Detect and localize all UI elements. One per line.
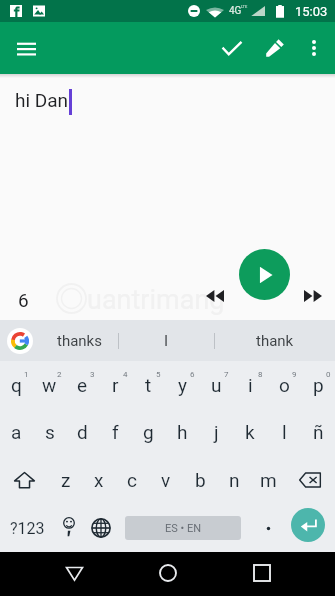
- staticText: ES • EN: [165, 522, 202, 535]
- staticText: 15:03: [295, 4, 328, 19]
- button[interactable]: f: [99, 408, 132, 456]
- button[interactable]: d: [66, 408, 99, 456]
- staticText: g: [143, 421, 154, 443]
- button[interactable]: More options: [294, 28, 334, 68]
- staticText: e: [77, 374, 88, 396]
- button[interactable]: r: [99, 361, 132, 408]
- staticText: k: [245, 421, 255, 443]
- staticText: w: [42, 374, 57, 396]
- staticText: h: [177, 421, 188, 443]
- button[interactable]: z: [49, 456, 82, 504]
- staticText: t: [145, 374, 152, 396]
- button[interactable]: m: [251, 456, 285, 504]
- button[interactable]: Play: [239, 249, 290, 300]
- button[interactable]: Back: [51, 552, 95, 596]
- button[interactable]: q: [0, 361, 33, 408]
- staticText: LTE: [241, 4, 248, 9]
- staticText: a: [11, 421, 22, 443]
- staticText: 0: [326, 370, 331, 379]
- staticText: 8: [258, 370, 263, 379]
- staticText: c: [127, 469, 137, 491]
- button[interactable]: j: [199, 408, 233, 456]
- button[interactable]: Fast forward: [299, 282, 327, 310]
- staticText: thank: [256, 332, 294, 350]
- button[interactable]: g: [132, 408, 165, 456]
- staticText: m: [260, 469, 277, 491]
- staticText: uantrimang: [87, 284, 225, 316]
- staticText: q: [11, 374, 22, 396]
- staticText: I: [164, 332, 169, 350]
- staticText: 9: [292, 370, 297, 379]
- button[interactable]: v: [149, 456, 183, 504]
- staticText: 4G: [229, 5, 242, 17]
- staticText: s: [45, 421, 55, 443]
- button[interactable]: Google: [7, 328, 33, 354]
- staticText: j: [214, 421, 219, 443]
- staticText: 6: [18, 289, 29, 311]
- staticText: b: [195, 469, 206, 491]
- button[interactable]: thank: [214, 320, 335, 361]
- staticText: o: [279, 374, 290, 396]
- staticText: i: [248, 374, 253, 396]
- button[interactable]: e: [66, 361, 99, 408]
- button[interactable]: s: [33, 408, 66, 456]
- button[interactable]: Emoji: [55, 504, 83, 552]
- button[interactable]: Enter: [287, 504, 335, 552]
- button[interactable]: Recent apps: [240, 552, 284, 596]
- staticText: 2: [57, 370, 62, 379]
- button[interactable]: Shift: [0, 456, 49, 504]
- button[interactable]: o: [267, 361, 301, 408]
- staticText: f: [112, 421, 119, 443]
- button[interactable]: thanks: [40, 320, 118, 361]
- button[interactable]: x: [82, 456, 115, 504]
- staticText: x: [94, 469, 104, 491]
- button[interactable]: p: [301, 361, 335, 408]
- button[interactable]: ?123: [0, 504, 55, 552]
- button[interactable]: t: [132, 361, 165, 408]
- staticText: z: [61, 469, 71, 491]
- button[interactable]: h: [165, 408, 199, 456]
- button[interactable]: b: [183, 456, 217, 504]
- button[interactable]: Home: [146, 552, 190, 596]
- button[interactable]: w: [33, 361, 66, 408]
- button[interactable]: n: [217, 456, 251, 504]
- staticText: 6: [190, 370, 195, 379]
- staticText: r: [112, 374, 119, 396]
- staticText: v: [161, 469, 171, 491]
- staticText: p: [313, 374, 324, 396]
- staticText: y: [178, 374, 187, 396]
- staticText: thanks: [57, 332, 102, 350]
- button[interactable]: i: [233, 361, 267, 408]
- button[interactable]: Navigation menu: [6, 28, 46, 68]
- button[interactable]: y: [165, 361, 199, 408]
- button[interactable]: Change language: [83, 504, 119, 552]
- staticText: 5: [156, 370, 161, 379]
- button[interactable]: ES • EN: [119, 504, 249, 552]
- staticText: 7: [224, 370, 229, 379]
- button[interactable]: Backspace: [285, 456, 335, 504]
- staticText: 4: [123, 370, 128, 379]
- button[interactable]: [249, 504, 287, 552]
- button[interactable]: I: [118, 320, 214, 361]
- staticText: ñ: [313, 421, 324, 443]
- staticText: 3: [90, 370, 95, 379]
- button[interactable]: Done: [206, 26, 250, 70]
- staticText: n: [229, 469, 240, 491]
- button[interactable]: Rewind: [201, 282, 229, 310]
- button[interactable]: l: [267, 408, 301, 456]
- staticText: l: [282, 421, 287, 443]
- button[interactable]: u: [199, 361, 233, 408]
- staticText: hi Dan: [15, 89, 69, 111]
- button[interactable]: c: [115, 456, 149, 504]
- staticText: ?123: [10, 519, 45, 538]
- button[interactable]: Edit: [250, 26, 294, 70]
- staticText: 1: [24, 370, 29, 379]
- staticText: d: [77, 421, 88, 443]
- button[interactable]: ñ: [301, 408, 335, 456]
- staticText: u: [211, 374, 222, 396]
- button[interactable]: a: [0, 408, 33, 456]
- button[interactable]: k: [233, 408, 267, 456]
